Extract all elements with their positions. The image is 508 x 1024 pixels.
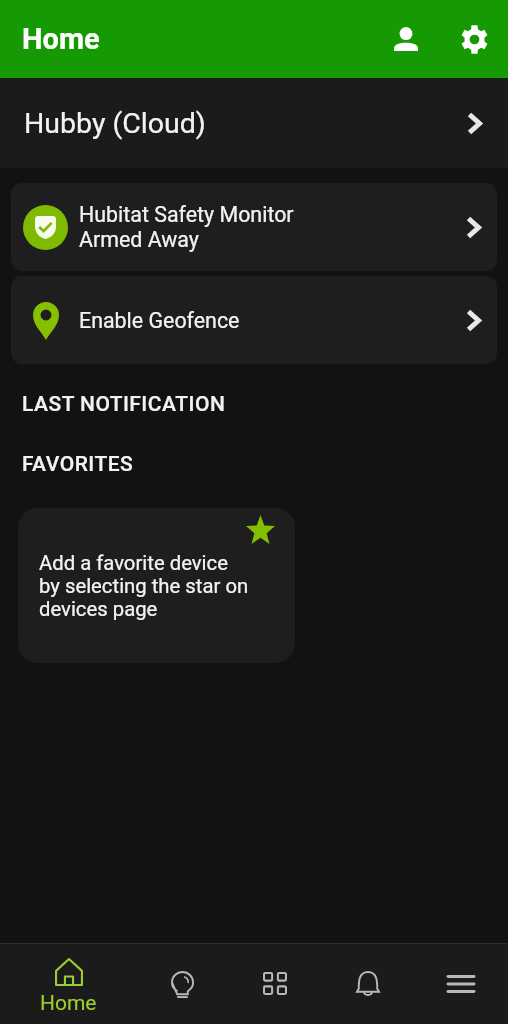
staticText: FAVORITES	[22, 452, 134, 477]
staticText: Hubby (Cloud)	[24, 107, 206, 140]
staticText: Add a favorite device by selecting the s…	[39, 551, 249, 621]
button[interactable]: Dashboards	[229, 943, 321, 1024]
button[interactable]: Menu	[415, 943, 507, 1024]
button[interactable]: Settings	[450, 15, 498, 63]
button[interactable]: Notifications	[322, 943, 414, 1024]
staticText: Hubitat Safety Monitor Armed Away	[79, 202, 294, 252]
staticText: Enable Geofence	[79, 308, 240, 333]
button[interactable]: Hubby (Cloud)	[0, 78, 508, 168]
button[interactable]: Add a favorite device by selecting the s…	[18, 508, 295, 663]
button[interactable]: Enable Geofence	[11, 276, 497, 364]
staticText: Home	[40, 991, 97, 1016]
staticText: LAST NOTIFICATION	[22, 392, 226, 417]
button[interactable]: Devices	[136, 943, 228, 1024]
button[interactable]: Hubitat Safety Monitor Armed Away	[11, 183, 497, 271]
staticText: Home	[22, 22, 100, 56]
button[interactable]: Account	[382, 15, 430, 63]
button[interactable]: Home	[24, 943, 113, 1024]
